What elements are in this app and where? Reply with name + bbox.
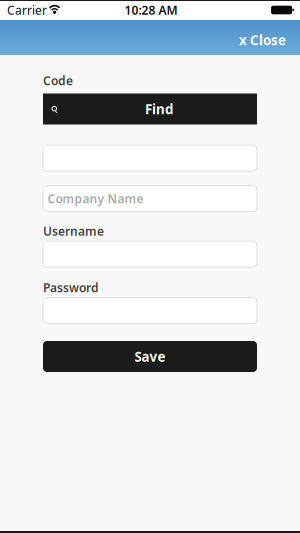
- staticText: Company Name: [47, 190, 143, 206]
- staticText: Carrier: [7, 2, 47, 18]
- staticText: Code: [43, 72, 73, 88]
- staticText: 10:28 AM: [124, 2, 177, 18]
- button[interactable]: Save: [43, 341, 257, 372]
- staticText: Find: [145, 100, 173, 118]
- button[interactable]: Find: [43, 93, 257, 124]
- staticText: Save: [134, 348, 165, 365]
- staticText: x Close: [239, 31, 286, 49]
- staticText: Username: [43, 223, 104, 239]
- button[interactable]: x Close: [229, 17, 294, 59]
- staticText: Password: [43, 279, 99, 295]
